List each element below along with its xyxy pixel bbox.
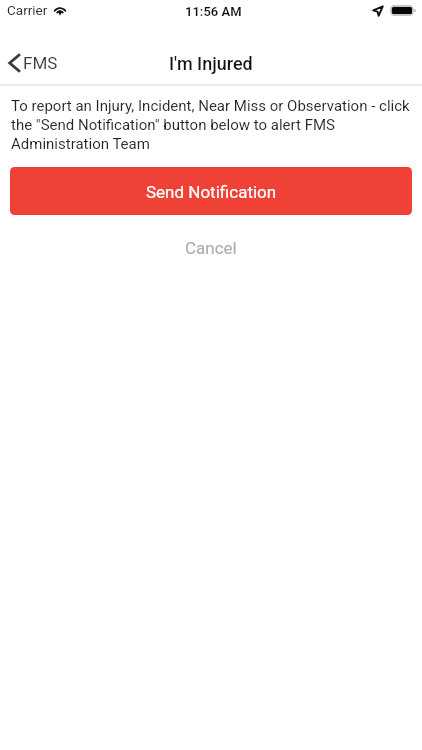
staticText: Cancel — [185, 238, 237, 258]
button[interactable]: Back — [8, 53, 58, 73]
staticText: To report an Injury, Incident, Near Miss… — [11, 97, 411, 153]
button[interactable]: Cancel — [0, 231, 422, 264]
staticText: Send Notification — [146, 182, 277, 202]
staticText: I'm Injured — [169, 53, 253, 74]
staticText: Carrier — [7, 2, 48, 18]
button[interactable]: Send Notification — [10, 167, 412, 215]
other: Back — [8, 53, 21, 73]
staticText: FMS — [23, 53, 58, 73]
staticText: 11:56 AM — [185, 4, 242, 19]
